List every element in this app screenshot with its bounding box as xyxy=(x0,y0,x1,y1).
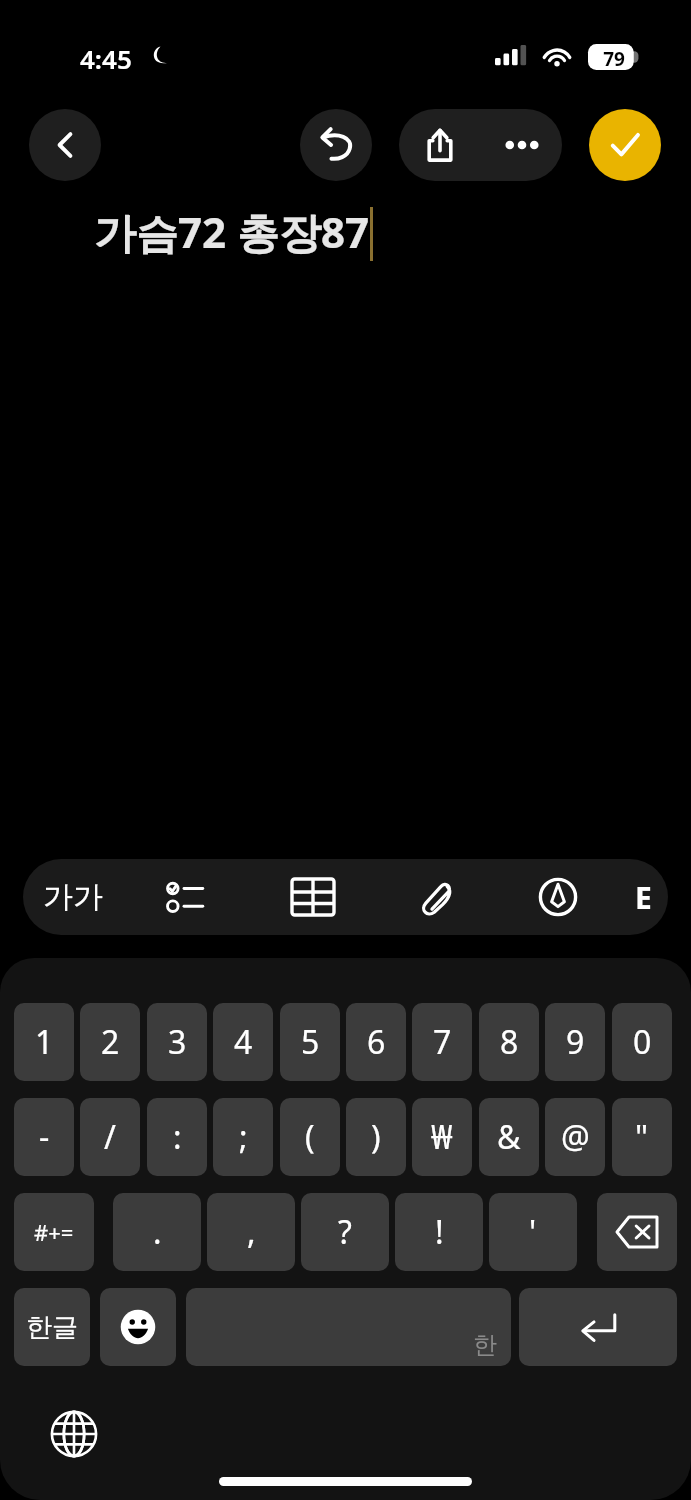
staticText: 6 xyxy=(367,1020,386,1064)
button[interactable]: 1 xyxy=(14,1003,74,1081)
staticText: 4:45 xyxy=(80,41,132,76)
staticText: ) xyxy=(371,1115,381,1159)
button[interactable]: ( xyxy=(280,1098,340,1176)
button[interactable]: Share xyxy=(399,109,481,181)
button[interactable]: & xyxy=(479,1098,539,1176)
button[interactable]: , xyxy=(207,1193,295,1271)
staticText: . xyxy=(153,1210,162,1254)
staticText: 9 xyxy=(566,1020,585,1064)
button[interactable]: / xyxy=(80,1098,140,1176)
staticText: ₩ xyxy=(431,1115,453,1159)
staticText: : xyxy=(173,1115,182,1159)
staticText: & xyxy=(497,1115,521,1159)
staticText: 가가 xyxy=(43,878,103,916)
staticText: 7 xyxy=(433,1020,452,1064)
button[interactable]: Space xyxy=(186,1288,511,1366)
staticText: 0 xyxy=(633,1020,652,1064)
staticText: - xyxy=(39,1115,50,1159)
button[interactable]: 6 xyxy=(346,1003,406,1081)
staticText: 4 xyxy=(234,1020,253,1064)
button[interactable]: . xyxy=(113,1193,201,1271)
staticText: ' xyxy=(529,1210,537,1254)
button[interactable]: @ xyxy=(545,1098,605,1176)
button[interactable]: E xyxy=(618,859,668,935)
staticText: " xyxy=(635,1115,649,1159)
staticText: 2 xyxy=(101,1020,120,1064)
button[interactable]: Emoji xyxy=(100,1288,176,1366)
staticText: 1 xyxy=(35,1020,54,1064)
staticText: 가슴72 총장87 xyxy=(94,203,370,260)
button[interactable]: ! xyxy=(395,1193,483,1271)
staticText: 8 xyxy=(500,1020,519,1064)
button[interactable]: #+= xyxy=(14,1193,94,1271)
button[interactable]: 2 xyxy=(80,1003,140,1081)
staticText: 79 xyxy=(594,46,634,72)
button[interactable]: Table xyxy=(248,859,378,935)
button[interactable]: 3 xyxy=(147,1003,207,1081)
button[interactable]: Checklist xyxy=(123,859,248,935)
staticText: ; xyxy=(239,1115,248,1159)
staticText: , xyxy=(247,1210,256,1254)
button[interactable]: 0 xyxy=(612,1003,672,1081)
button[interactable]: Back xyxy=(29,109,101,181)
button[interactable]: 8 xyxy=(479,1003,539,1081)
button[interactable]: Attach xyxy=(378,859,498,935)
staticText: E xyxy=(635,877,652,918)
button[interactable]: ₩ xyxy=(412,1098,472,1176)
staticText: ! xyxy=(435,1210,444,1254)
button[interactable]: ) xyxy=(346,1098,406,1176)
button[interactable]: 한글 xyxy=(14,1288,90,1366)
staticText: ( xyxy=(305,1115,315,1159)
staticText: @ xyxy=(561,1115,590,1159)
button[interactable]: 7 xyxy=(412,1003,472,1081)
button[interactable]: Undo xyxy=(300,109,372,181)
button[interactable]: 가가 xyxy=(23,859,123,935)
button[interactable]: Delete xyxy=(597,1193,677,1271)
staticText: 한 xyxy=(473,1330,497,1360)
button[interactable]: Markup xyxy=(498,859,618,935)
staticText: ? xyxy=(338,1210,352,1254)
button[interactable]: 9 xyxy=(545,1003,605,1081)
staticText: 3 xyxy=(168,1020,187,1064)
button[interactable]: Switch keyboard xyxy=(40,1400,108,1468)
button[interactable]: - xyxy=(14,1098,74,1176)
staticText: 한글 xyxy=(26,1311,78,1344)
button[interactable]: " xyxy=(612,1098,672,1176)
button[interactable]: 5 xyxy=(280,1003,340,1081)
staticText: #+= xyxy=(34,1217,74,1247)
staticText: 5 xyxy=(301,1020,320,1064)
button[interactable]: : xyxy=(147,1098,207,1176)
button[interactable]: 4 xyxy=(213,1003,273,1081)
button[interactable]: Done xyxy=(589,109,661,181)
staticText: / xyxy=(104,1115,116,1159)
button[interactable]: More options xyxy=(481,109,562,181)
button[interactable]: Return xyxy=(519,1288,677,1366)
button[interactable]: ' xyxy=(489,1193,577,1271)
button[interactable]: ? xyxy=(301,1193,389,1271)
button[interactable]: ; xyxy=(213,1098,273,1176)
